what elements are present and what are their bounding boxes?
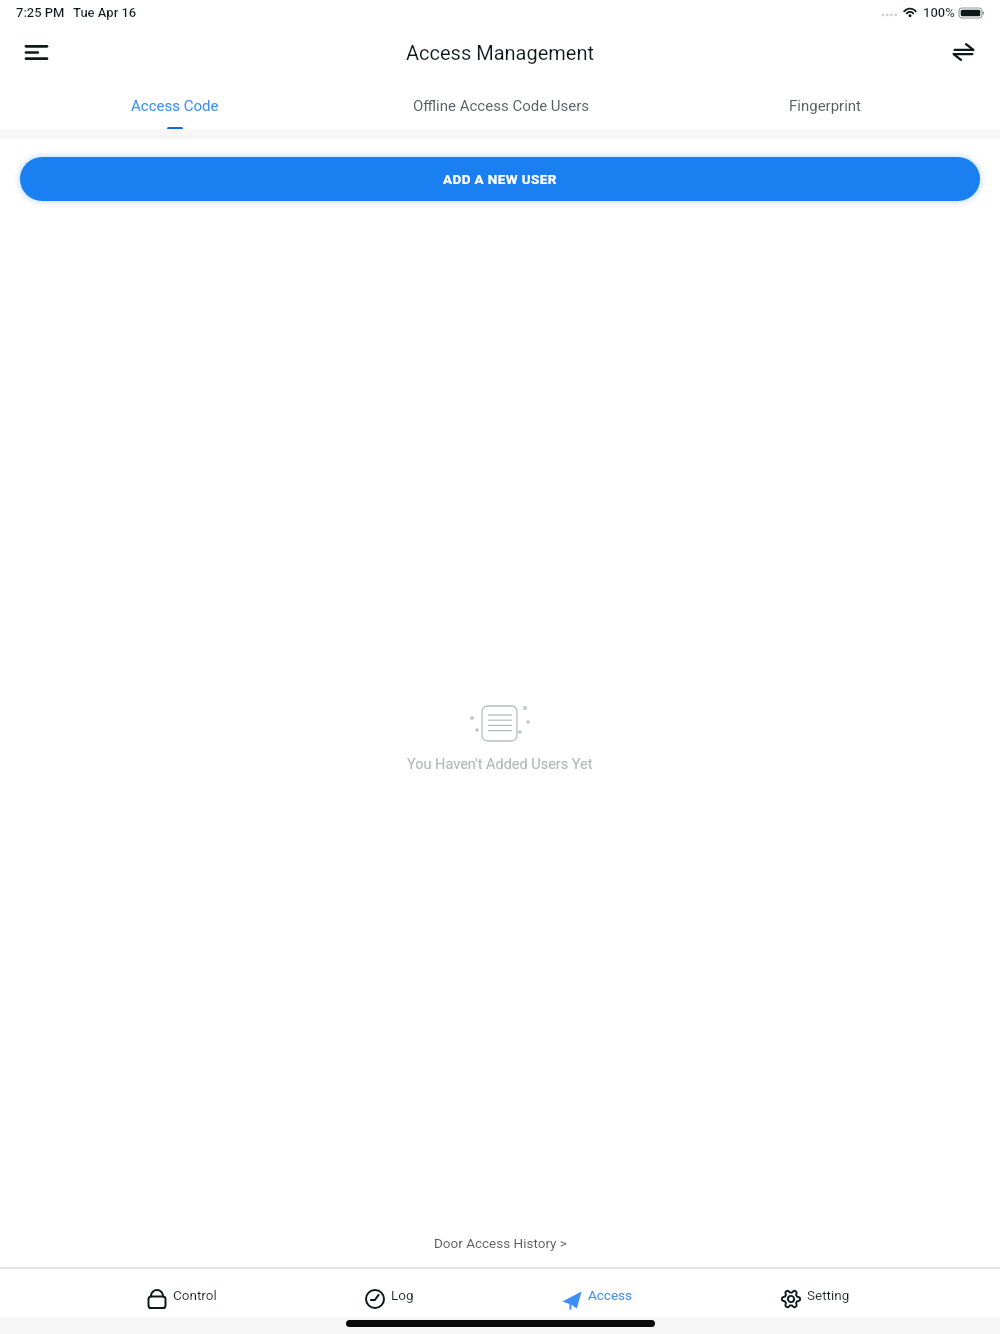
button[interactable]: Setting — [753, 1275, 877, 1319]
button[interactable]: Fingerprint — [695, 78, 955, 129]
staticText: Log — [391, 1287, 414, 1303]
staticText: 100% — [923, 5, 955, 20]
button[interactable]: Access Code — [45, 78, 305, 129]
staticText: Fingerprint — [789, 97, 862, 115]
staticText: 7:25 PM — [16, 5, 65, 20]
button[interactable]: Access — [535, 1275, 659, 1319]
staticText: Access Code — [131, 97, 219, 115]
button[interactable]: Menu — [15, 34, 58, 71]
button[interactable]: ADD A NEW USER — [20, 157, 980, 201]
staticText: ADD A NEW USER — [443, 171, 557, 187]
staticText: Control — [173, 1287, 217, 1303]
staticText: Door Access History > — [434, 1235, 567, 1251]
staticText: You Haven't Added Users Yet — [407, 756, 593, 773]
staticText: Tue Apr 16 — [73, 5, 137, 20]
staticText: Access — [588, 1287, 633, 1303]
button[interactable]: Switch mode — [943, 34, 984, 70]
button[interactable]: Control — [120, 1275, 244, 1319]
staticText: Offline Access Code Users — [413, 97, 590, 115]
staticText: Access Management — [406, 41, 595, 64]
staticText: Setting — [807, 1287, 850, 1303]
button[interactable]: Log — [327, 1275, 451, 1319]
button[interactable]: Offline Access Code Users — [371, 78, 631, 129]
button[interactable]: Door Access History > — [424, 1231, 577, 1255]
